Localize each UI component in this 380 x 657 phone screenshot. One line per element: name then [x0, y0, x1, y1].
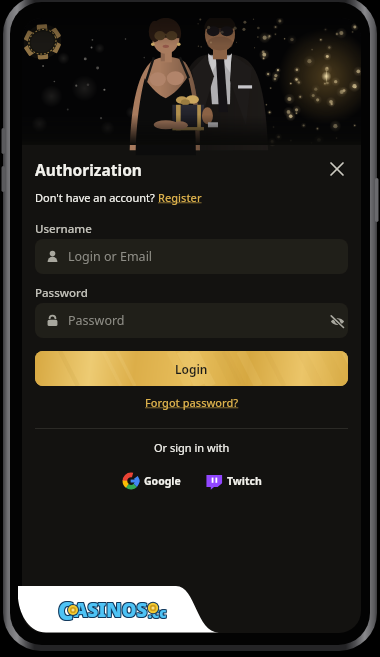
staticText: .cc — [148, 603, 167, 621]
staticText: .cc — [147, 605, 166, 623]
staticText: ASINOS — [74, 598, 148, 623]
staticText: C — [59, 593, 75, 626]
button[interactable]: Forgot password? — [145, 395, 239, 410]
staticText: Google — [144, 474, 181, 488]
staticText: ASINOS — [74, 597, 148, 622]
button[interactable]: Login or Email — [35, 239, 348, 274]
staticText: Login — [175, 361, 208, 377]
staticText: .cc — [148, 605, 167, 623]
staticText: C — [57, 595, 73, 628]
button[interactable]: Google — [120, 469, 183, 493]
staticText: C — [59, 595, 75, 628]
staticText: .cc — [147, 603, 166, 621]
staticText: C — [58, 593, 74, 626]
staticText: ASINOS — [73, 596, 147, 621]
staticText: Password — [68, 312, 125, 329]
staticText: Username — [35, 221, 92, 237]
staticText: Twitch — [227, 474, 262, 488]
staticText: .cc — [148, 604, 167, 622]
button[interactable]: Login — [35, 351, 348, 386]
staticText: Password — [35, 285, 88, 301]
staticText: C — [58, 595, 74, 628]
staticText: .cc — [149, 604, 168, 622]
staticText: ASINOS — [75, 596, 149, 621]
staticText: .cc — [149, 603, 168, 621]
staticText: Authorization — [35, 159, 142, 180]
staticText: C — [57, 593, 73, 626]
button[interactable]: Show password — [328, 312, 346, 330]
staticText: .cc — [147, 604, 166, 622]
staticText: .cc — [149, 605, 168, 623]
staticText: ASINOS — [73, 598, 147, 623]
staticText: ASINOS — [74, 596, 148, 621]
staticText: ASINOS — [75, 597, 149, 622]
staticText: Forgot password? — [145, 395, 239, 410]
staticText: C — [59, 594, 75, 627]
button[interactable]: Close — [326, 158, 348, 180]
staticText: Don't have an account? — [35, 190, 158, 205]
button[interactable]: Register — [158, 190, 202, 205]
staticText: ASINOS — [73, 597, 147, 622]
staticText: C — [57, 594, 73, 627]
staticText: Or sign in with — [154, 440, 230, 455]
staticText: Register — [158, 190, 202, 205]
button[interactable]: Twitch — [203, 469, 264, 493]
button[interactable]: Password — [35, 303, 348, 338]
staticText: Login or Email — [68, 248, 153, 265]
staticText: C — [58, 594, 74, 627]
staticText: ASINOS — [75, 598, 149, 623]
